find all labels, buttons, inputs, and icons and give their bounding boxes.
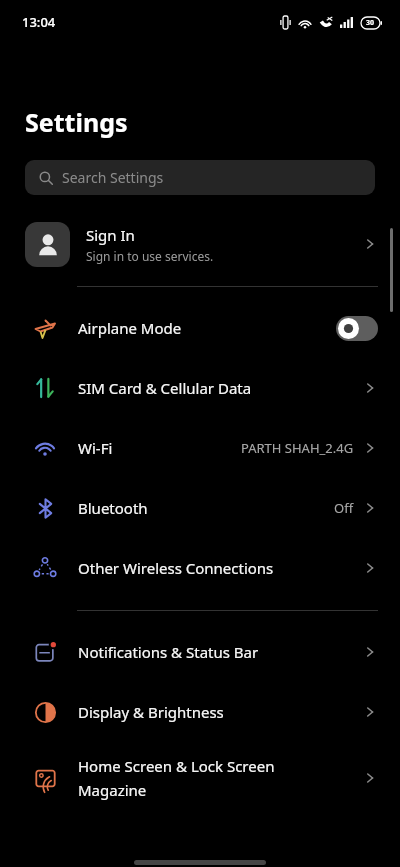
button[interactable]: Search Settings (25, 160, 375, 195)
button[interactable]: SIM Card & Cellular Data (0, 358, 400, 418)
staticText: Notifications & Status Bar (78, 642, 362, 662)
button[interactable]: Display & Brightness (0, 682, 400, 742)
button[interactable]: Airplane Mode (0, 298, 400, 358)
staticText: 13:04 (22, 13, 56, 31)
staticText: 30 (366, 18, 375, 28)
staticText: Off (334, 499, 354, 517)
button[interactable]: Other Wireless Connections (0, 538, 400, 598)
staticText: Home Screen & Lock Screen Magazine (78, 756, 362, 800)
staticText: Display & Brightness (78, 702, 362, 722)
button[interactable]: Sign In (0, 214, 400, 274)
staticText: Airplane Mode (78, 318, 336, 338)
button[interactable]: Home Screen & Lock Screen Magazine (0, 742, 400, 814)
staticText: PARTH SHAH_2.4G (241, 439, 354, 457)
staticText: SIM Card & Cellular Data (78, 378, 362, 398)
staticText: Other Wireless Connections (78, 558, 362, 578)
staticText: Wi-Fi (78, 438, 241, 458)
staticText: Sign in to use services. (86, 248, 214, 264)
button[interactable]: Airplane Mode toggle (336, 316, 378, 341)
button[interactable]: Notifications & Status Bar (0, 622, 400, 682)
button[interactable]: Wi-Fi (0, 418, 400, 478)
staticText: Bluetooth (78, 498, 334, 518)
staticText: Search Settings (62, 168, 164, 187)
staticText: Sign In (86, 225, 135, 245)
button[interactable]: Bluetooth (0, 478, 400, 538)
staticText: Settings (25, 105, 128, 139)
